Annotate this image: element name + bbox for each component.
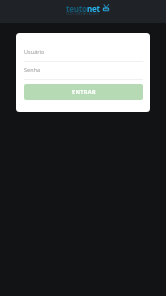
button[interactable]: teuto: [66, 3, 100, 18]
staticText: TELECOMUNICAÇÕES: [66, 12, 100, 16]
staticText: ENTRAR: [72, 88, 96, 95]
button[interactable]: TV: [102, 4, 110, 12]
staticText: Usuário: [24, 48, 45, 55]
button[interactable]: Usuário: [24, 44, 143, 62]
staticText: teuto: [66, 3, 87, 14]
button[interactable]: Senha: [24, 62, 143, 80]
staticText: Senha: [24, 66, 41, 73]
staticText: net: [87, 3, 100, 14]
button[interactable]: ENTRAR: [24, 84, 143, 100]
